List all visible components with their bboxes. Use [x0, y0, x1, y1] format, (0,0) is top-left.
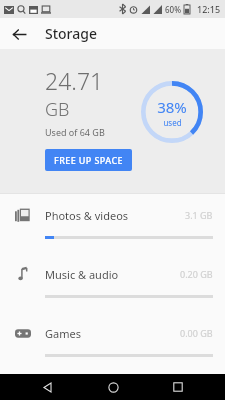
staticText: 60%	[165, 4, 181, 15]
staticText: FREE UP SPACE	[54, 154, 123, 166]
button[interactable]: FREE UP SPACE	[45, 149, 132, 171]
staticText: 38%	[157, 97, 187, 117]
staticText: Games	[45, 326, 180, 341]
staticText: GB	[45, 97, 70, 122]
button[interactable]: Games	[0, 312, 225, 371]
staticText: Used of 64 GB	[45, 126, 105, 138]
button[interactable]: Home	[95, 374, 131, 400]
staticText: 0.20 GB	[180, 268, 213, 280]
staticText: 0.00 GB	[180, 327, 213, 339]
staticText: 24.71	[45, 65, 104, 96]
staticText: 3.1 GB	[185, 209, 213, 221]
staticText: 12:15	[197, 3, 221, 15]
staticText: Photos & videos	[45, 208, 185, 223]
staticText: Music & audio	[45, 267, 180, 282]
staticText: Storage	[45, 24, 97, 43]
button[interactable]: Back	[29, 374, 65, 400]
button[interactable]: Back	[7, 22, 31, 46]
button[interactable]: Music & audio	[0, 253, 225, 312]
button[interactable]: Recent apps	[160, 374, 196, 400]
staticText: used	[163, 117, 182, 128]
button[interactable]: Photos & videos	[0, 194, 225, 253]
